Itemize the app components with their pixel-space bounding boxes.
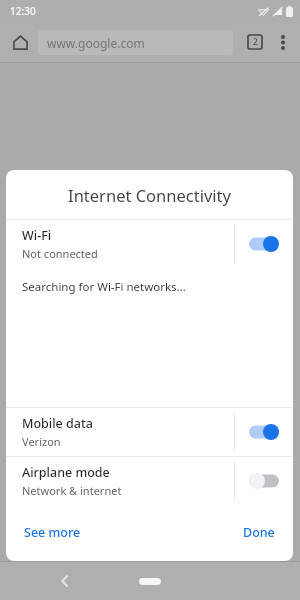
staticText: 2 [253, 36, 258, 48]
button[interactable]: Home [6, 28, 34, 56]
staticText: Mobile data [22, 415, 93, 432]
staticText: Verizon [22, 434, 61, 449]
staticText: Network & internet [22, 483, 122, 498]
staticText: Internet Connectivity [68, 184, 231, 206]
button[interactable]: Wi-Fi toggle [235, 220, 293, 268]
button[interactable]: www.google.com [38, 30, 233, 55]
button[interactable]: See more [16, 518, 89, 547]
button[interactable]: Mobile data [6, 408, 293, 456]
staticText: Done [243, 524, 275, 541]
button[interactable]: Mobile data toggle [235, 408, 293, 456]
button[interactable]: Tabs [242, 29, 268, 55]
staticText: Not connected [22, 246, 98, 261]
button[interactable]: Back [50, 567, 78, 595]
staticText: www.google.com [47, 35, 145, 51]
button[interactable]: Airplane mode toggle [235, 457, 293, 505]
staticText: Searching for Wi-Fi networks... [22, 279, 186, 295]
button[interactable]: Wi-Fi [6, 220, 293, 268]
button[interactable]: More options [270, 29, 296, 55]
button[interactable]: Airplane mode [6, 457, 293, 505]
button[interactable]: Done [235, 518, 283, 547]
staticText: Wi-Fi [22, 227, 52, 244]
staticText: See more [24, 524, 81, 541]
staticText: 12:30 [10, 4, 36, 18]
staticText: Airplane mode [22, 464, 110, 481]
button[interactable]: Home [133, 570, 167, 592]
